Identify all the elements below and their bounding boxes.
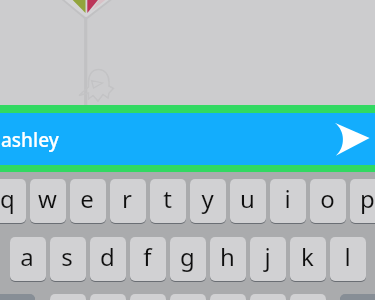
button[interactable]: b <box>210 294 246 300</box>
button[interactable]: Key <box>0 294 35 300</box>
staticText: j <box>264 240 271 273</box>
staticText: h <box>220 240 235 273</box>
staticText: g <box>180 240 195 273</box>
button[interactable]: Send <box>305 113 375 165</box>
button[interactable]: z <box>50 294 86 300</box>
button[interactable]: Key <box>340 294 375 300</box>
button[interactable]: s <box>50 237 86 281</box>
staticText: d <box>100 240 115 273</box>
staticText: a <box>20 240 34 273</box>
staticText: y <box>201 182 214 215</box>
staticText: q <box>0 182 15 215</box>
button[interactable]: x <box>90 294 126 300</box>
button[interactable]: l <box>330 237 366 281</box>
button[interactable]: ashley <box>0 113 375 165</box>
button[interactable]: v <box>170 294 206 300</box>
button[interactable]: o <box>310 179 346 223</box>
button[interactable]: w <box>30 179 66 223</box>
button[interactable]: r <box>110 179 146 223</box>
button[interactable]: c <box>130 294 166 300</box>
staticText: i <box>284 182 291 215</box>
button[interactable]: h <box>210 237 246 281</box>
button[interactable]: a <box>10 237 46 281</box>
button[interactable]: q <box>0 179 26 223</box>
staticText: t <box>163 182 172 215</box>
staticText: f <box>143 240 152 273</box>
staticText: l <box>344 240 351 273</box>
button[interactable]: d <box>90 237 126 281</box>
staticText: p <box>360 182 375 215</box>
staticText: ashley <box>1 127 59 153</box>
button[interactable]: t <box>150 179 186 223</box>
staticText: e <box>80 182 94 215</box>
button[interactable]: k <box>290 237 326 281</box>
staticText: u <box>240 182 255 215</box>
button[interactable]: f <box>130 237 166 281</box>
staticText: k <box>301 240 314 273</box>
button[interactable]: m <box>290 294 326 300</box>
staticText: o <box>320 182 335 215</box>
staticText: r <box>122 182 132 215</box>
button[interactable]: e <box>70 179 106 223</box>
button[interactable]: y <box>190 179 226 223</box>
button[interactable]: j <box>250 237 286 281</box>
button[interactable]: n <box>250 294 286 300</box>
button[interactable]: i <box>270 179 306 223</box>
staticText: s <box>61 240 73 273</box>
staticText: w <box>38 182 57 215</box>
button[interactable]: u <box>230 179 266 223</box>
button[interactable]: g <box>170 237 206 281</box>
button[interactable]: p <box>350 179 375 223</box>
